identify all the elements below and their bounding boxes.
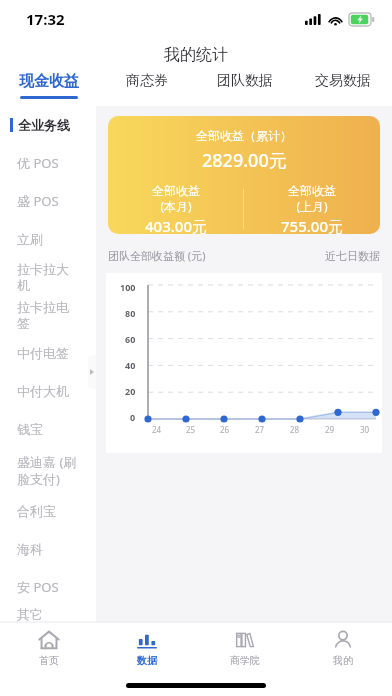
staticText: 海科 <box>17 541 81 557</box>
button[interactable]: 合利宝 <box>0 492 96 530</box>
staticText: 商学院 <box>230 654 260 667</box>
button[interactable]: 中付电签 <box>0 334 96 372</box>
button[interactable]: 中付大机 <box>0 372 96 410</box>
staticText: 安 POS <box>17 578 81 596</box>
button[interactable]: 拉卡拉大机 <box>0 258 96 296</box>
button[interactable]: 首页 <box>0 622 98 674</box>
staticText: 中付电签 <box>17 345 81 361</box>
staticText: 中付大机 <box>17 383 81 399</box>
staticText: 拉卡拉电签 <box>17 299 81 332</box>
staticText: 钱宝 <box>17 421 81 437</box>
button[interactable]: 立刷 <box>0 220 96 258</box>
staticText: 80 <box>125 307 136 319</box>
button[interactable]: 安 POS <box>0 568 96 606</box>
staticText: 24 <box>152 424 162 435</box>
button[interactable]: 我的 <box>294 622 392 674</box>
staticText: 27 <box>255 424 265 435</box>
staticText: 403.00元 <box>145 216 207 234</box>
staticText: 755.00元 <box>281 216 343 234</box>
staticText: 30 <box>360 424 370 435</box>
staticText: 2829.00元 <box>202 148 287 173</box>
staticText: 全部收益 <box>288 183 336 198</box>
staticText: 商态券 <box>126 72 168 90</box>
button[interactable]: 拉卡拉电签 <box>0 296 96 334</box>
staticText: 近七日数据 <box>325 249 380 263</box>
staticText: (上月) <box>296 198 328 214</box>
staticText: 40 <box>125 359 136 371</box>
staticText: 全部收益 <box>152 183 200 198</box>
button[interactable]: 商学院 <box>196 622 294 674</box>
staticText: (本月) <box>160 198 192 214</box>
staticText: 交易数据 <box>315 72 371 90</box>
staticText: 盛迪嘉 (刷脸支付) <box>17 453 81 487</box>
button[interactable]: 优 POS <box>0 144 96 182</box>
staticText: 28 <box>290 424 300 435</box>
button[interactable]: 海科 <box>0 530 96 568</box>
button[interactable]: 全部收益（累计） <box>108 116 380 234</box>
staticText: 26 <box>220 424 230 435</box>
staticText: 其它 <box>17 606 81 622</box>
staticText: 现金收益 <box>19 72 79 91</box>
staticText: 首页 <box>39 654 59 667</box>
button[interactable]: 盛 POS <box>0 182 96 220</box>
button[interactable]: 盛迪嘉 (刷脸支付) <box>0 448 96 492</box>
staticText: 全部收益（累计） <box>196 128 292 143</box>
staticText: 我的统计 <box>164 45 228 65</box>
staticText: 立刷 <box>17 231 81 247</box>
staticText: 合利宝 <box>17 503 81 519</box>
button[interactable]: 商态券 <box>98 72 196 106</box>
staticText: 优 POS <box>17 154 81 172</box>
staticText: 数据 <box>137 654 157 667</box>
staticText: 29 <box>325 424 335 435</box>
staticText: 0 <box>130 411 136 423</box>
button[interactable]: 其它 <box>0 606 96 622</box>
staticText: 60 <box>125 333 136 345</box>
button[interactable]: 数据 <box>98 622 196 674</box>
staticText: 17:32 <box>26 9 65 29</box>
button[interactable]: 团队数据 <box>196 72 294 106</box>
button[interactable]: 现金收益 <box>0 72 98 106</box>
button[interactable]: 全业务线 <box>0 106 96 144</box>
staticText: 团队数据 <box>217 72 273 90</box>
staticText: 拉卡拉大机 <box>17 261 81 294</box>
staticText: 25 <box>186 424 196 435</box>
button[interactable]: 钱宝 <box>0 410 96 448</box>
staticText: 盛 POS <box>17 192 81 210</box>
staticText: 100 <box>120 281 136 293</box>
staticText: 团队全部收益额 (元) <box>108 248 206 263</box>
staticText: 我的 <box>333 654 353 667</box>
button[interactable]: 交易数据 <box>294 72 392 106</box>
staticText: 全业务线 <box>18 117 82 133</box>
staticText: 20 <box>125 385 136 397</box>
